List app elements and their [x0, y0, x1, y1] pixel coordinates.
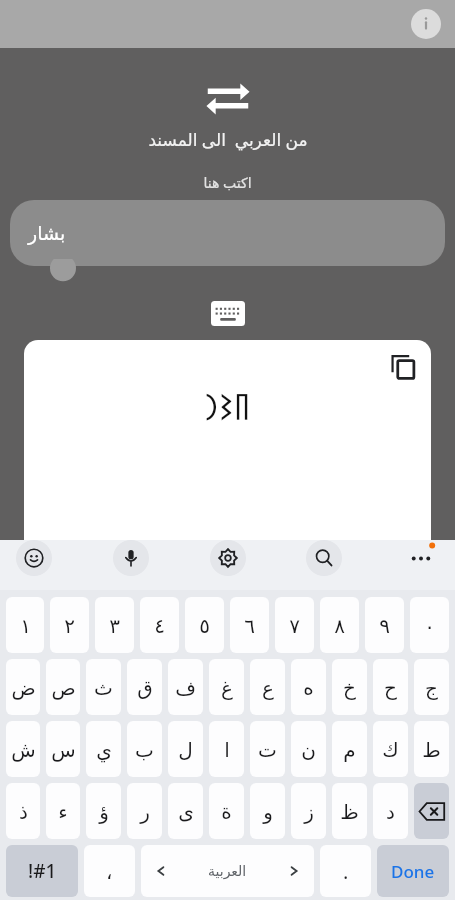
button[interactable]: ١: [6, 597, 44, 653]
staticText: ب: [135, 738, 154, 761]
staticText: د: [386, 800, 395, 823]
button[interactable]: ٣: [95, 597, 134, 653]
button[interactable]: Emoji: [16, 540, 52, 576]
staticText: غ: [221, 676, 233, 699]
button[interactable]: د: [373, 783, 408, 839]
button[interactable]: ة: [209, 783, 244, 839]
button[interactable]: غ: [209, 659, 244, 715]
button[interactable]: .: [320, 845, 371, 897]
staticText: ٥: [199, 614, 210, 637]
button[interactable]: ،: [84, 845, 135, 897]
button[interactable]: خ: [332, 659, 367, 715]
button[interactable]: Show keyboard: [206, 298, 250, 328]
button[interactable]: ٩: [365, 597, 404, 653]
staticText: ك: [382, 738, 399, 761]
button[interactable]: ٦: [230, 597, 269, 653]
button[interactable]: ك: [373, 721, 408, 777]
staticText: ص: [51, 676, 76, 699]
button[interactable]: ذ: [6, 783, 40, 839]
staticText: اكتب هنا: [203, 173, 252, 192]
button[interactable]: ض: [6, 659, 40, 715]
button[interactable]: ن: [291, 721, 326, 777]
staticText: ؤ: [99, 800, 109, 823]
button[interactable]: ٢: [50, 597, 89, 653]
button[interactable]: ر: [127, 783, 162, 839]
button[interactable]: ش: [6, 721, 40, 777]
staticText: ذ: [19, 800, 28, 823]
button[interactable]: ص: [46, 659, 80, 715]
staticText: ٨: [334, 614, 345, 637]
button[interactable]: ي: [86, 721, 121, 777]
button[interactable]: ظ: [332, 783, 367, 839]
staticText: 𐩨𐩦𐩧: [204, 388, 251, 429]
button[interactable]: ء: [46, 783, 80, 839]
staticText: بشار: [28, 222, 66, 244]
button[interactable]: ق: [127, 659, 162, 715]
button[interactable]: ط: [414, 721, 449, 777]
button[interactable]: ؤ: [86, 783, 121, 839]
button[interactable]: ٧: [275, 597, 314, 653]
button[interactable]: Backspace: [414, 783, 449, 839]
button[interactable]: ع: [250, 659, 285, 715]
button[interactable]: ه: [291, 659, 326, 715]
staticText: ٤: [154, 614, 165, 637]
staticText: ز: [304, 800, 314, 823]
staticText: ي: [96, 738, 112, 761]
button[interactable]: ت: [250, 721, 285, 777]
staticText: ش: [11, 738, 36, 761]
staticText: ٣: [109, 614, 120, 637]
staticText: !#1: [28, 858, 57, 884]
button[interactable]: ث: [86, 659, 121, 715]
staticText: ل: [178, 738, 193, 761]
button[interactable]: بشار: [10, 200, 445, 266]
staticText: ،: [106, 860, 113, 883]
button[interactable]: Info: [411, 9, 441, 39]
button[interactable]: ا: [209, 721, 244, 777]
staticText: ط: [422, 738, 441, 761]
button[interactable]: Done: [377, 845, 449, 897]
button[interactable]: Copy: [383, 346, 425, 388]
staticText: ض: [11, 676, 36, 699]
button[interactable]: More options: [403, 540, 439, 576]
button[interactable]: ف: [168, 659, 203, 715]
staticText: م: [343, 738, 356, 761]
staticText: ا: [224, 738, 230, 761]
button[interactable]: م: [332, 721, 367, 777]
button[interactable]: ج: [414, 659, 449, 715]
button[interactable]: Swap languages: [200, 78, 256, 118]
staticText: العربية: [208, 863, 247, 879]
staticText: و: [263, 800, 273, 823]
staticText: ج: [425, 676, 438, 699]
button[interactable]: ح: [373, 659, 408, 715]
staticText: Done: [391, 860, 435, 883]
staticText: ت: [258, 738, 277, 761]
button[interactable]: Voice input: [113, 540, 149, 576]
staticText: س: [51, 738, 76, 761]
staticText: ف: [175, 676, 196, 699]
staticText: ق: [137, 676, 153, 699]
button[interactable]: Settings: [210, 540, 246, 576]
staticText: ر: [140, 800, 150, 823]
staticText: ء: [58, 800, 68, 823]
button[interactable]: و: [250, 783, 285, 839]
button[interactable]: ٥: [185, 597, 224, 653]
staticText: ٧: [289, 614, 300, 637]
button[interactable]: س: [46, 721, 80, 777]
button[interactable]: العربية: [141, 845, 314, 897]
button[interactable]: ٨: [320, 597, 359, 653]
button[interactable]: ب: [127, 721, 162, 777]
button[interactable]: ل: [168, 721, 203, 777]
staticText: ة: [221, 800, 232, 823]
staticText: خ: [343, 676, 356, 699]
button[interactable]: !#1: [6, 845, 78, 897]
button[interactable]: ٤: [140, 597, 179, 653]
staticText: من العربي الى المسند: [148, 128, 308, 151]
staticText: ن: [301, 738, 316, 761]
button[interactable]: ٠: [410, 597, 449, 653]
button[interactable]: ز: [291, 783, 326, 839]
staticText: ظ: [340, 800, 359, 823]
button[interactable]: ى: [168, 783, 203, 839]
staticText: ٢: [64, 614, 75, 637]
button[interactable]: Search: [306, 540, 342, 576]
staticText: ح: [384, 676, 397, 699]
